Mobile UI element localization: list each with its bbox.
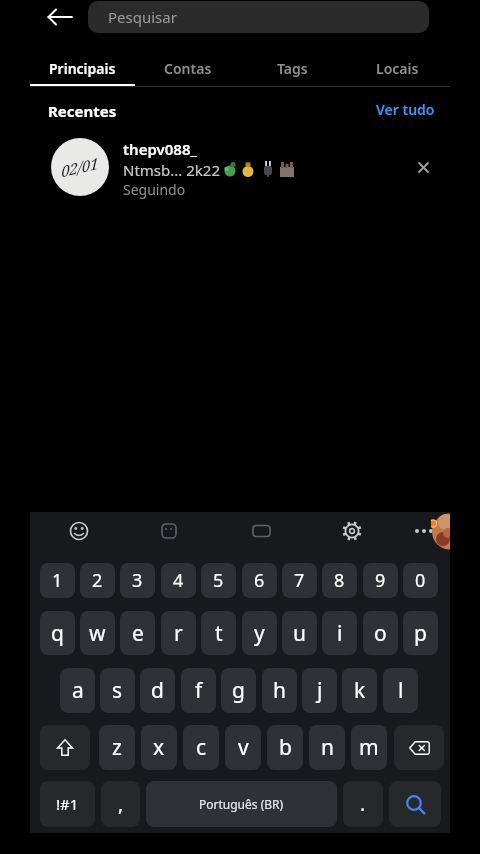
button[interactable]: w — [80, 611, 115, 655]
staticText: 0 — [415, 568, 426, 593]
button[interactable]: v — [225, 725, 261, 770]
button[interactable]: Pesquisar — [88, 1, 429, 33]
button[interactable]: 8 — [322, 563, 357, 598]
staticText: 3 — [132, 568, 143, 593]
button[interactable] — [412, 156, 434, 178]
staticText: z — [112, 733, 122, 762]
staticText: f — [195, 676, 203, 705]
staticText: 02/01 — [59, 153, 101, 181]
staticText: a — [72, 676, 84, 705]
button[interactable]: q — [40, 611, 75, 655]
staticText: Tags — [277, 59, 308, 78]
staticText: e — [132, 619, 144, 648]
button[interactable]: 2 — [80, 563, 115, 598]
button[interactable]: r — [161, 611, 196, 655]
button[interactable]: i — [322, 611, 357, 655]
button[interactable]: 3 — [120, 563, 155, 598]
button[interactable]: m — [351, 725, 387, 770]
button[interactable]: g — [221, 668, 256, 713]
button[interactable]: Contas — [135, 52, 240, 84]
staticText: Contas — [164, 59, 212, 78]
button[interactable]: o — [363, 611, 398, 655]
button[interactable]: 02/01 — [30, 132, 410, 202]
button[interactable]: . — [343, 781, 383, 827]
staticText: 2 — [92, 568, 103, 593]
staticText: 7 — [294, 568, 305, 593]
staticText: Seguindo — [123, 180, 186, 199]
staticText: m — [359, 733, 379, 762]
staticText: . — [360, 791, 366, 817]
button[interactable] — [45, 3, 75, 31]
button[interactable]: 7 — [282, 563, 317, 598]
staticText: 8 — [334, 568, 345, 593]
staticText: 4 — [173, 568, 184, 593]
button[interactable]: c — [183, 725, 219, 770]
button[interactable]: 6 — [242, 563, 277, 598]
staticText: u — [293, 619, 306, 648]
staticText: v — [238, 733, 249, 762]
button[interactable]: n — [309, 725, 345, 770]
button[interactable]: 1 — [40, 563, 75, 598]
button[interactable]: , — [101, 781, 140, 827]
staticText: i — [337, 619, 343, 648]
button[interactable]: h — [262, 668, 297, 713]
staticText: , — [118, 791, 124, 817]
button[interactable]: l — [383, 668, 418, 713]
button[interactable]: j — [302, 668, 337, 713]
staticText: Ver tudo — [376, 100, 435, 119]
button[interactable]: t — [201, 611, 236, 655]
staticText: 5 — [213, 568, 224, 593]
button[interactable]: 0 — [403, 563, 438, 598]
button[interactable]: b — [267, 725, 303, 770]
button[interactable]: p — [403, 611, 438, 655]
button[interactable]: f — [181, 668, 216, 713]
button[interactable]: u — [282, 611, 317, 655]
button[interactable]: z — [99, 725, 135, 770]
staticText: l — [398, 676, 404, 705]
button[interactable]: k — [342, 668, 377, 713]
staticText: d — [151, 676, 164, 705]
button[interactable]: Principais — [30, 52, 135, 84]
button[interactable] — [40, 725, 90, 770]
staticText: Ntmsb... 2k22 — [123, 160, 220, 180]
staticText: !#1 — [56, 794, 79, 814]
staticText: n — [321, 733, 334, 762]
staticText: thepv088_ — [123, 139, 197, 159]
staticText: k — [354, 676, 366, 705]
staticText: x — [153, 733, 165, 762]
staticText: j — [317, 676, 323, 705]
button[interactable]: y — [242, 611, 277, 655]
staticText: Pesquisar — [108, 7, 177, 27]
button[interactable]: Tags — [240, 52, 345, 84]
button[interactable]: !#1 — [40, 781, 95, 827]
button[interactable]: 5 — [201, 563, 236, 598]
button[interactable]: 9 — [363, 563, 398, 598]
staticText: 1 — [52, 568, 63, 593]
staticText: Locais — [376, 59, 419, 78]
button[interactable]: s — [100, 668, 135, 713]
staticText: r — [174, 619, 183, 648]
staticText: Português (BR) — [199, 796, 284, 812]
staticText: g — [232, 676, 245, 705]
staticText: t — [215, 619, 223, 648]
staticText: 6 — [254, 568, 265, 593]
staticText: 9 — [375, 568, 386, 593]
staticText: Recentes — [48, 101, 117, 121]
button[interactable]: a — [60, 668, 95, 713]
staticText: h — [273, 676, 286, 705]
button[interactable]: 4 — [161, 563, 196, 598]
staticText: o — [374, 619, 387, 648]
staticText: s — [112, 676, 123, 705]
button[interactable]: e — [120, 611, 155, 655]
button[interactable]: x — [141, 725, 177, 770]
staticText: w — [89, 619, 106, 648]
staticText: b — [279, 733, 292, 762]
button[interactable] — [389, 781, 441, 827]
staticText: Principais — [49, 59, 116, 78]
button[interactable]: Português (BR) — [146, 781, 337, 827]
button[interactable] — [394, 725, 444, 770]
button[interactable]: Ver tudo — [376, 100, 435, 119]
button[interactable]: Locais — [345, 52, 450, 84]
staticText: q — [51, 619, 64, 648]
button[interactable]: d — [140, 668, 175, 713]
